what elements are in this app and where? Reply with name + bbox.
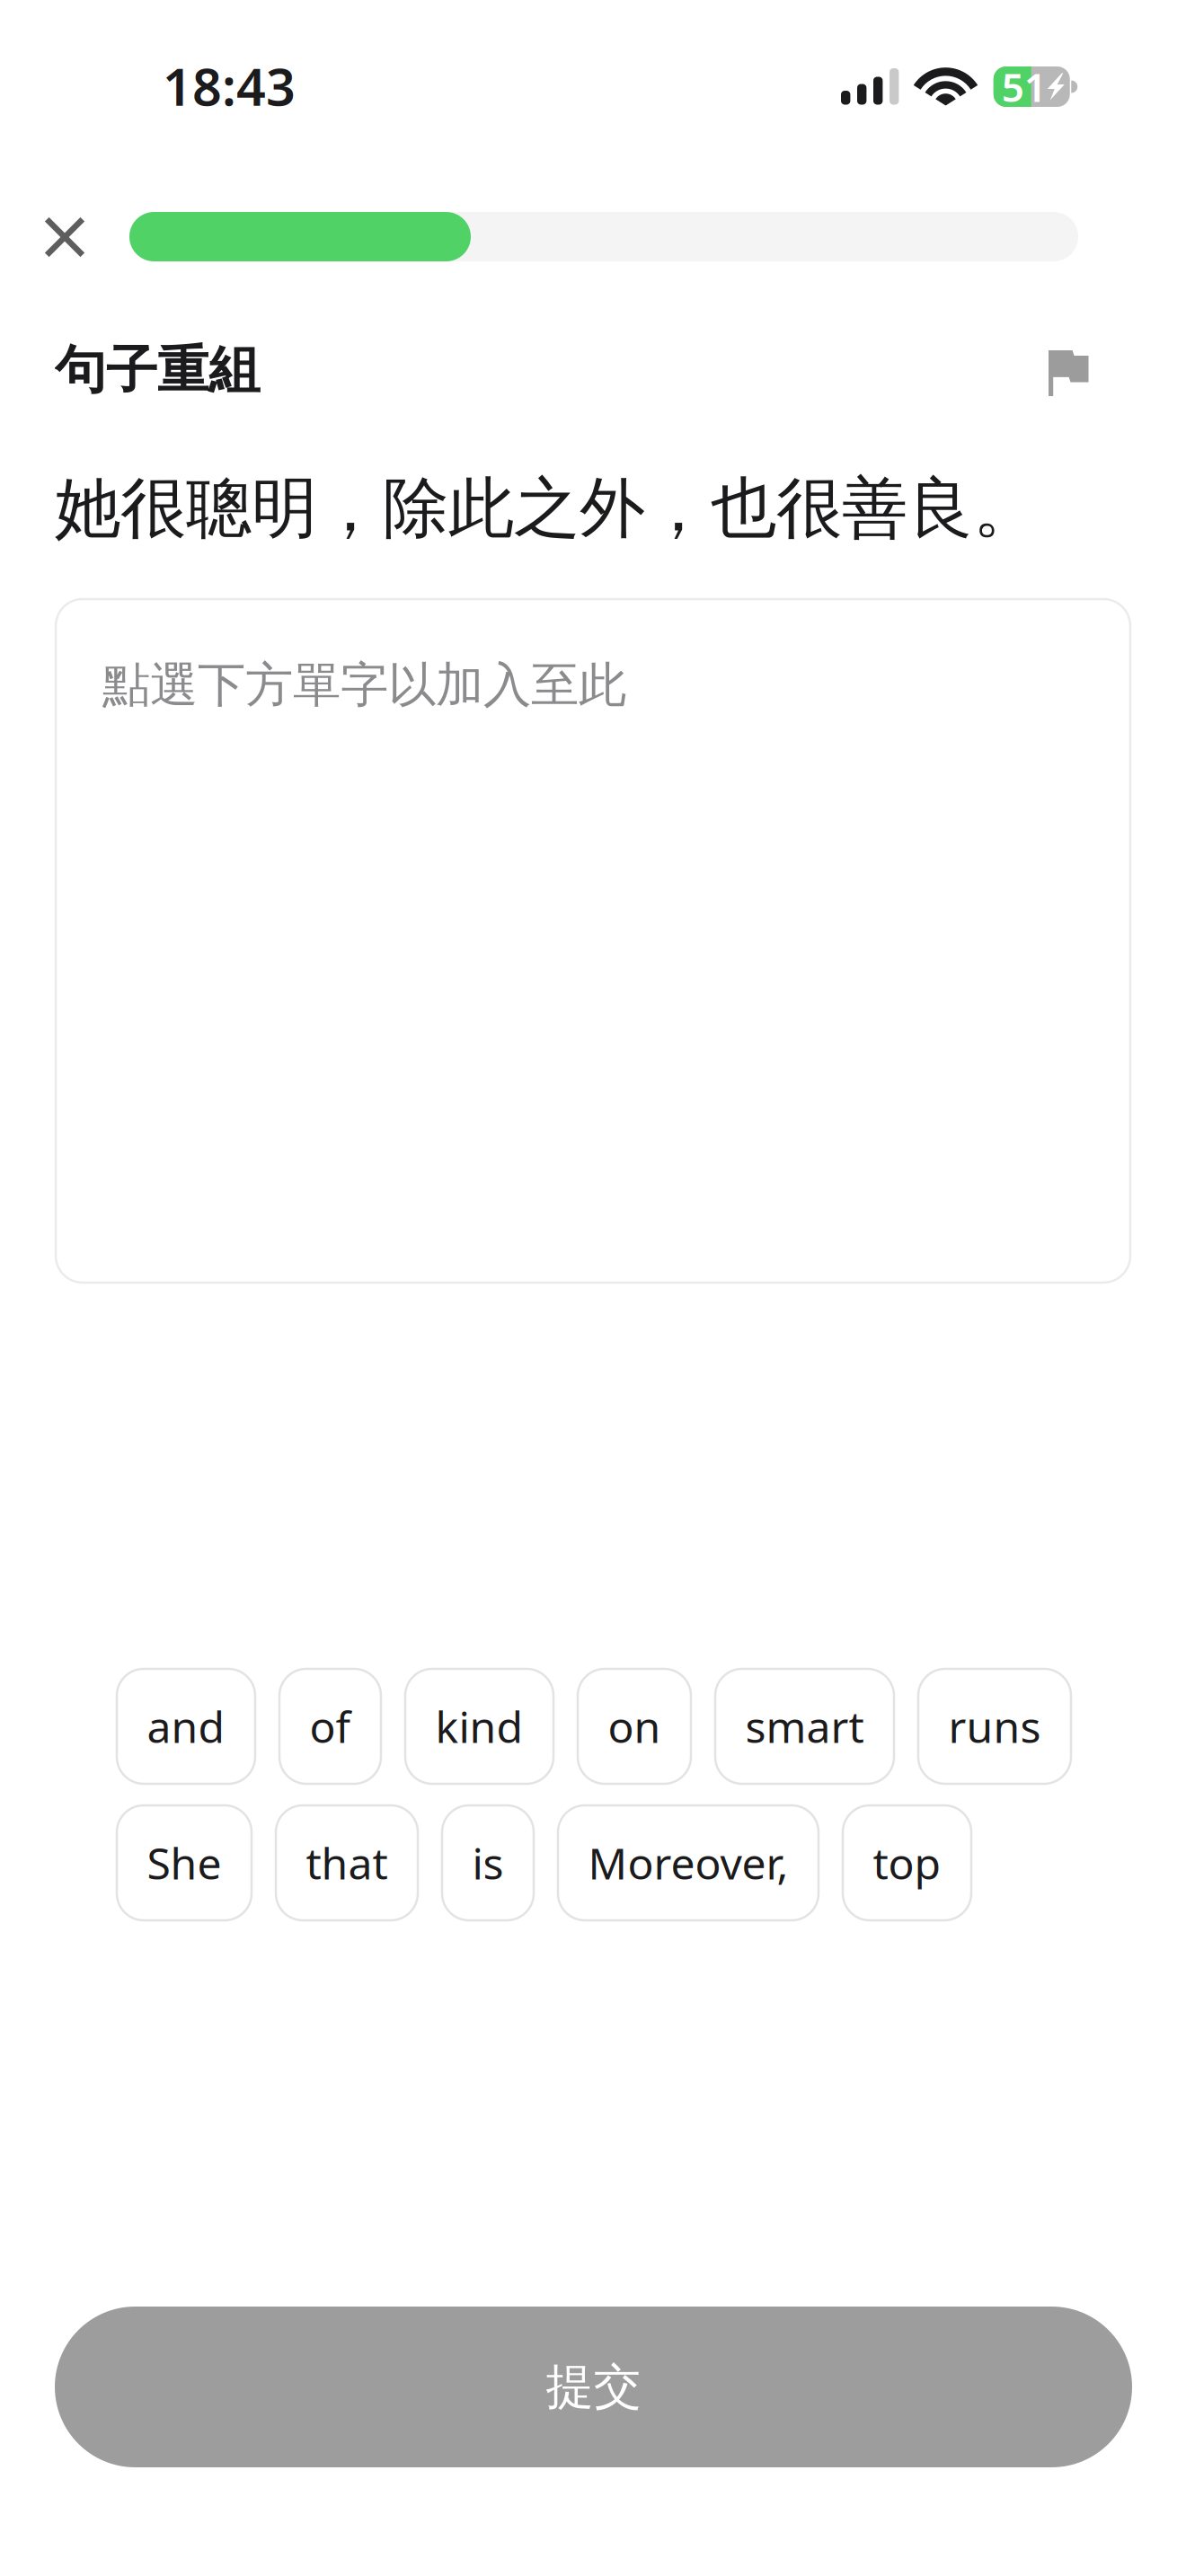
- staticText: 句子重組: [55, 339, 260, 402]
- staticText: Moreover,: [588, 1834, 788, 1891]
- staticText: 18:43: [163, 52, 296, 120]
- staticText: smart: [745, 1698, 864, 1755]
- button[interactable]: on: [578, 1669, 691, 1784]
- staticText: top: [873, 1834, 941, 1891]
- staticText: 她很聰明，除此之外，也很善良。: [55, 468, 1039, 549]
- staticText: 51: [1002, 60, 1047, 113]
- staticText: that: [306, 1834, 388, 1891]
- button[interactable]: and: [117, 1669, 255, 1784]
- button[interactable]: of: [279, 1669, 381, 1784]
- button[interactable]: smart: [715, 1669, 894, 1784]
- staticText: on: [608, 1698, 661, 1755]
- staticText: 點選下方單字以加入至此: [102, 656, 626, 715]
- button[interactable]: She: [117, 1805, 252, 1920]
- button[interactable]: Moreover,: [558, 1805, 819, 1920]
- staticText: of: [310, 1698, 351, 1755]
- staticText: kind: [435, 1698, 523, 1755]
- button[interactable]: runs: [918, 1669, 1071, 1784]
- button[interactable]: top: [843, 1805, 971, 1920]
- button[interactable]: Close: [45, 217, 84, 257]
- staticText: runs: [948, 1698, 1041, 1755]
- button[interactable]: 提交: [55, 2307, 1132, 2467]
- button[interactable]: is: [442, 1805, 534, 1920]
- staticText: She: [147, 1834, 221, 1891]
- button[interactable]: Report a problem: [1049, 350, 1089, 396]
- button[interactable]: kind: [405, 1669, 553, 1784]
- staticText: and: [147, 1698, 225, 1755]
- button[interactable]: that: [276, 1805, 418, 1920]
- staticText: is: [472, 1834, 504, 1891]
- staticText: 提交: [546, 2357, 641, 2416]
